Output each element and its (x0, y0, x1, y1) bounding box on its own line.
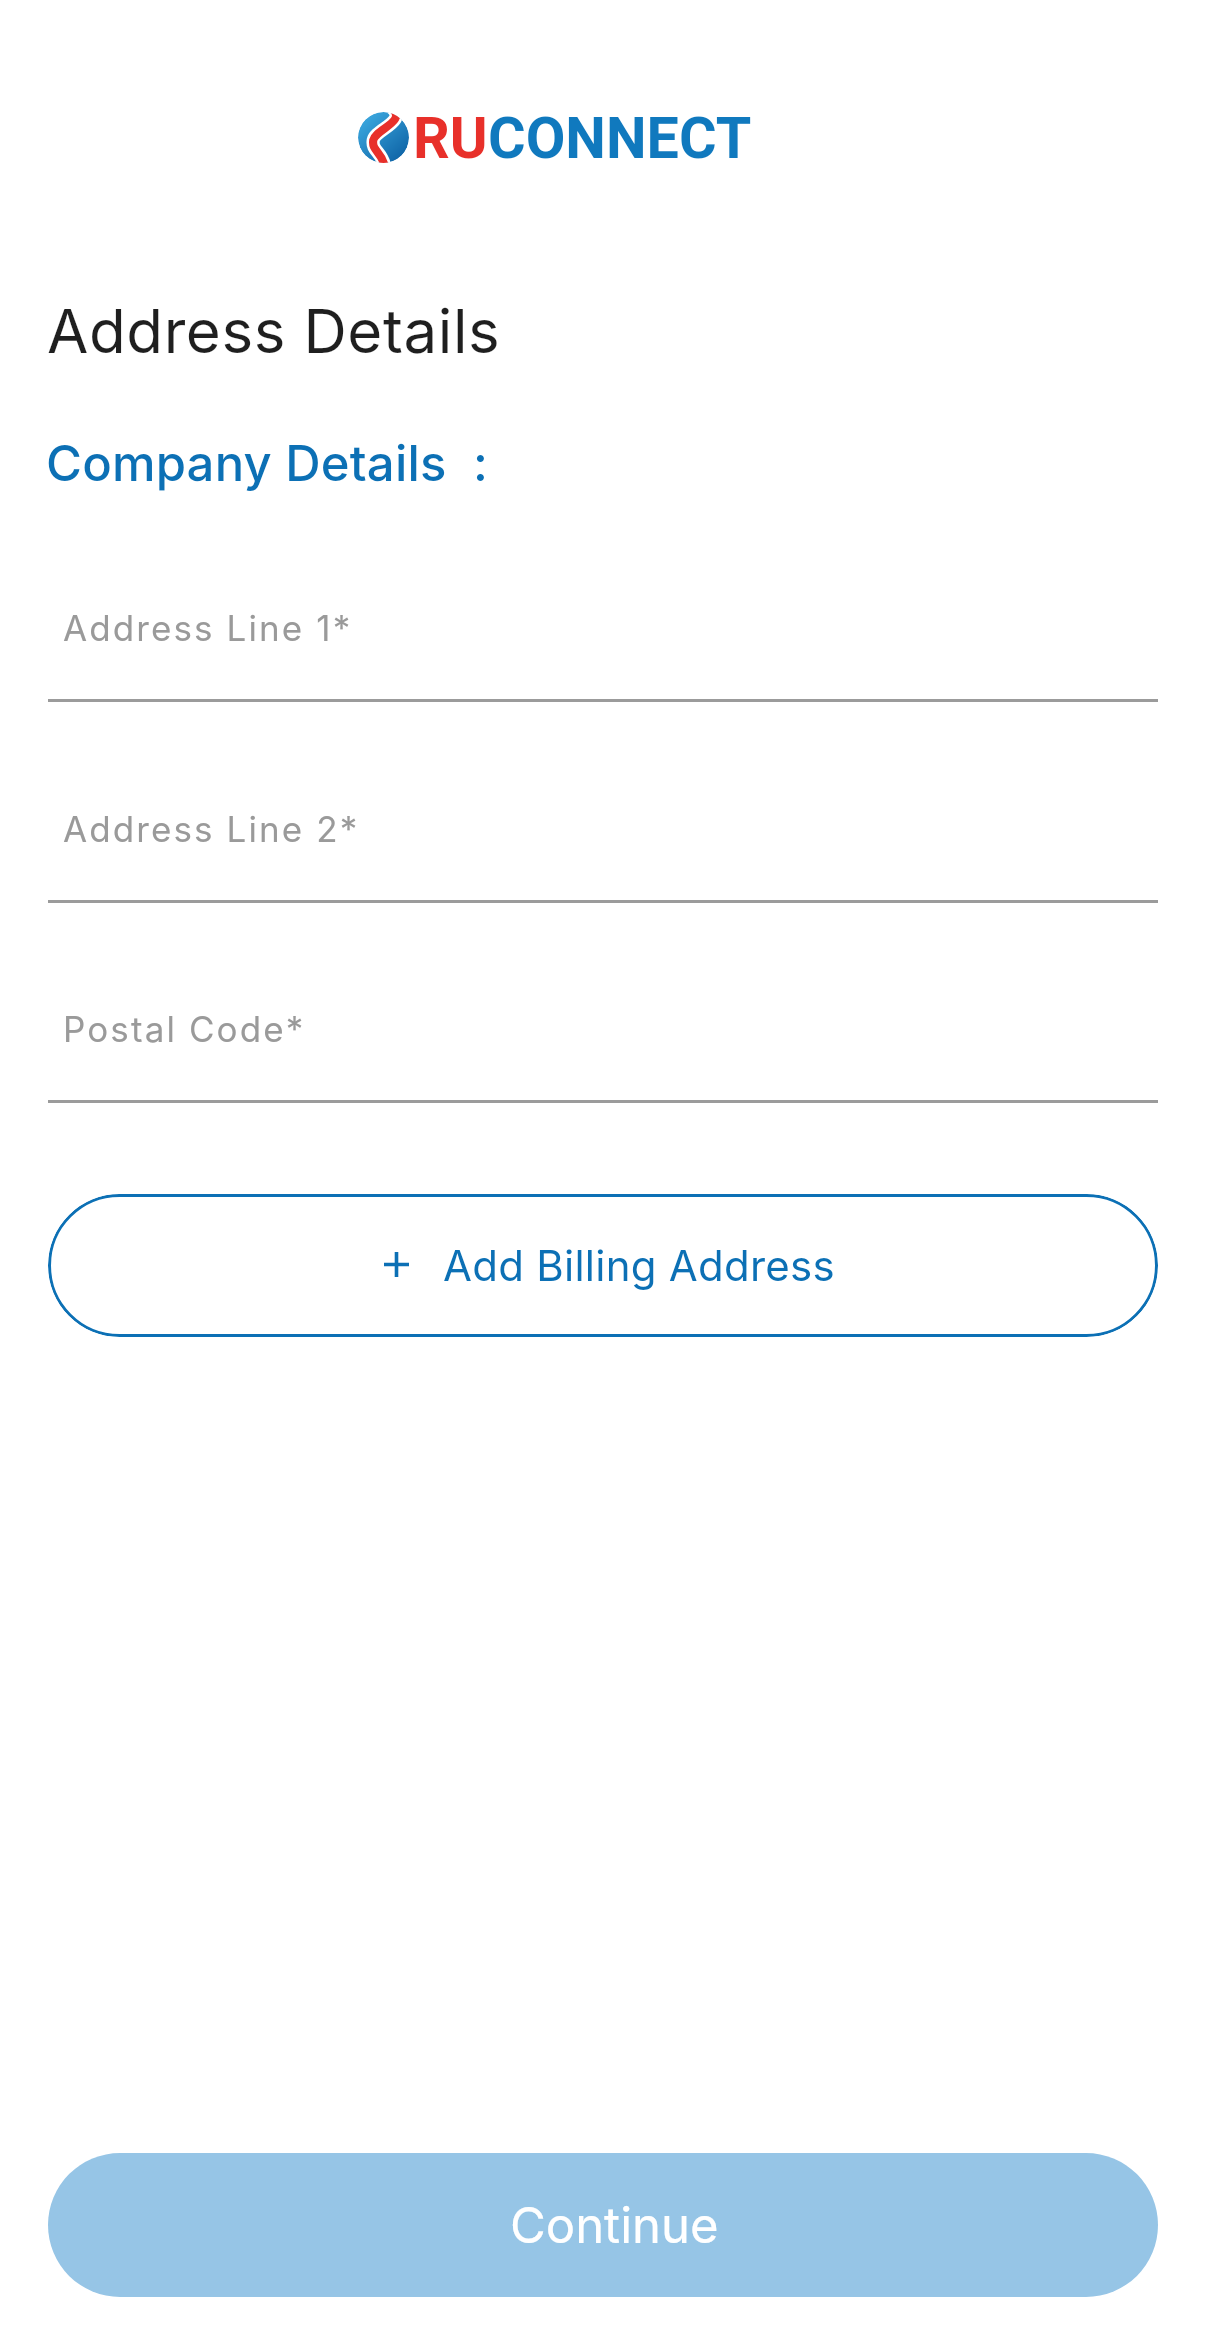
button[interactable]: Address Line 1* (48, 572, 1158, 703)
button[interactable]: Add Billing Address (48, 1194, 1158, 1337)
staticText: Postal Code* (63, 1008, 306, 1050)
button[interactable]: Postal Code* (48, 973, 1158, 1104)
staticText: Address Line 1* (63, 607, 353, 649)
staticText: Address Details (47, 295, 501, 368)
staticText: CONNECT (488, 105, 752, 172)
button[interactable]: Continue (48, 2153, 1158, 2297)
staticText: Add Billing Address (443, 1240, 835, 1291)
staticText: Company Details : (46, 434, 489, 493)
other: RuConnect logo (358, 112, 409, 163)
staticText: Continue (510, 2196, 719, 2255)
staticText: Address Line 2* (63, 808, 360, 850)
staticText: RU (413, 105, 488, 172)
button[interactable]: Address Line 2* (48, 773, 1158, 904)
